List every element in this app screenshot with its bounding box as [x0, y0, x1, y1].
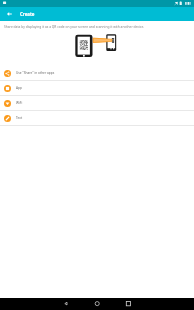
button[interactable]: Use "Share" in other apps [0, 66, 194, 81]
button[interactable]: Text [0, 111, 194, 126]
button[interactable]: WiFi [0, 96, 194, 111]
staticText: Create [20, 11, 35, 17]
staticText: App [16, 86, 22, 90]
staticText: Text [16, 116, 23, 120]
staticText: Use "Share" in other apps [16, 71, 55, 75]
staticText: Share data by displaying it as a QR code… [4, 25, 191, 29]
button[interactable]: Back [0, 7, 18, 21]
button[interactable]: App [0, 81, 194, 96]
staticText: WiFi [16, 101, 23, 105]
